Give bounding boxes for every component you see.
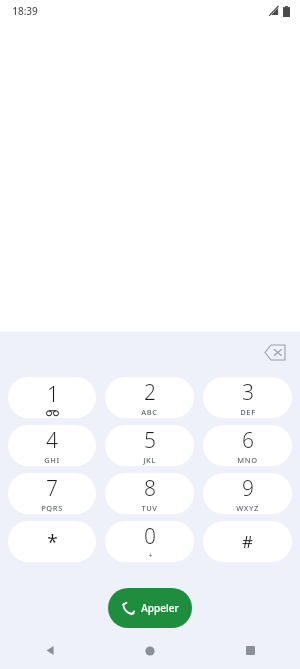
button[interactable]: 6 [203,425,292,466]
staticText: 7 [46,474,58,503]
staticText: 2 [144,378,156,407]
staticText: ABC [141,407,158,417]
button[interactable]: # [203,521,292,562]
staticText: 18:39 [12,4,38,18]
button[interactable]: 0 [105,521,194,562]
staticText: 6 [242,426,254,455]
button[interactable]: Back [0,632,100,669]
staticText: 8 [144,474,156,503]
button[interactable]: * [8,521,96,562]
button[interactable]: 4 [8,425,96,466]
staticText: * [47,529,58,555]
staticText: 4 [46,426,58,455]
button[interactable]: 1 [8,377,96,418]
staticText: 5 [144,426,156,455]
button[interactable]: 5 [105,425,194,466]
staticText: Appeler [141,601,179,615]
button[interactable]: Backspace [258,335,292,369]
staticText: + [148,551,153,561]
staticText: 0 [144,522,156,551]
staticText: JKL [143,455,156,465]
button[interactable]: Recent apps [200,632,300,669]
button[interactable]: Appeler [108,588,192,628]
staticText: GHI [44,455,60,465]
button[interactable]: 2 [105,377,194,418]
button[interactable]: 8 [105,473,194,514]
staticText: TUV [141,503,158,513]
staticText: PQRS [41,503,63,513]
button[interactable]: 3 [203,377,292,418]
staticText: MNO [237,455,258,465]
button[interactable]: 7 [8,473,96,514]
button[interactable]: Home [100,632,200,669]
staticText: 1 [47,380,59,409]
button[interactable]: 9 [203,473,292,514]
staticText: WXYZ [236,503,259,513]
staticText: # [242,530,253,553]
staticText: DEF [240,407,256,417]
staticText: 3 [242,378,254,407]
staticText: 9 [242,474,254,503]
